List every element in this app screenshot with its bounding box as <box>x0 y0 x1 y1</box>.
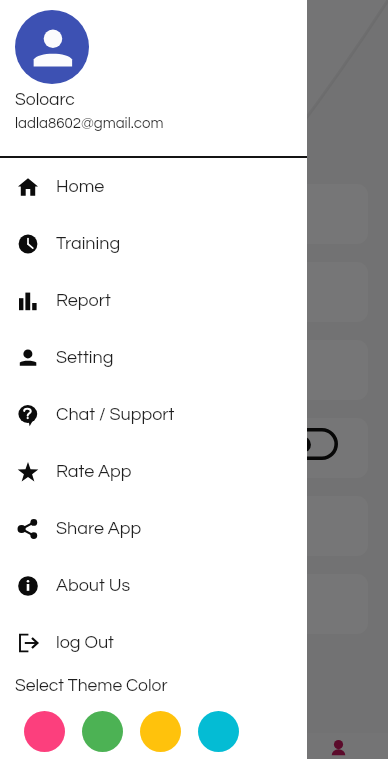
staticText: Select Theme Color <box>15 677 168 695</box>
staticText: Report <box>56 291 111 310</box>
button[interactable]: Theme color 3 <box>140 711 181 752</box>
staticText: Training <box>56 234 121 253</box>
staticText: ladla8602@gmail.com <box>15 116 164 131</box>
button[interactable]: Theme color 2 <box>82 711 123 752</box>
button[interactable]: Profile photo <box>15 10 89 84</box>
staticText: Chat / Support <box>56 405 175 424</box>
button[interactable]: Share App <box>0 500 307 557</box>
button[interactable]: Setting <box>0 329 307 386</box>
staticText: About Us <box>56 576 131 595</box>
button[interactable]: Report <box>0 272 307 329</box>
staticText: Soloarc <box>15 91 75 109</box>
button[interactable]: Theme color 4 <box>198 711 239 752</box>
staticText: Share App <box>56 519 142 538</box>
staticText: Setting <box>56 348 114 367</box>
button[interactable]: Rate App <box>0 443 307 500</box>
button[interactable]: About Us <box>0 557 307 614</box>
button[interactable]: Training <box>0 215 307 272</box>
staticText: Home <box>56 177 105 196</box>
button[interactable]: Home <box>0 158 307 215</box>
staticText: log Out <box>56 633 114 652</box>
button[interactable]: Theme color 1 <box>24 711 65 752</box>
button[interactable]: Chat / Support <box>0 386 307 443</box>
staticText: Rate App <box>56 462 132 481</box>
button[interactable]: log Out <box>0 614 307 671</box>
